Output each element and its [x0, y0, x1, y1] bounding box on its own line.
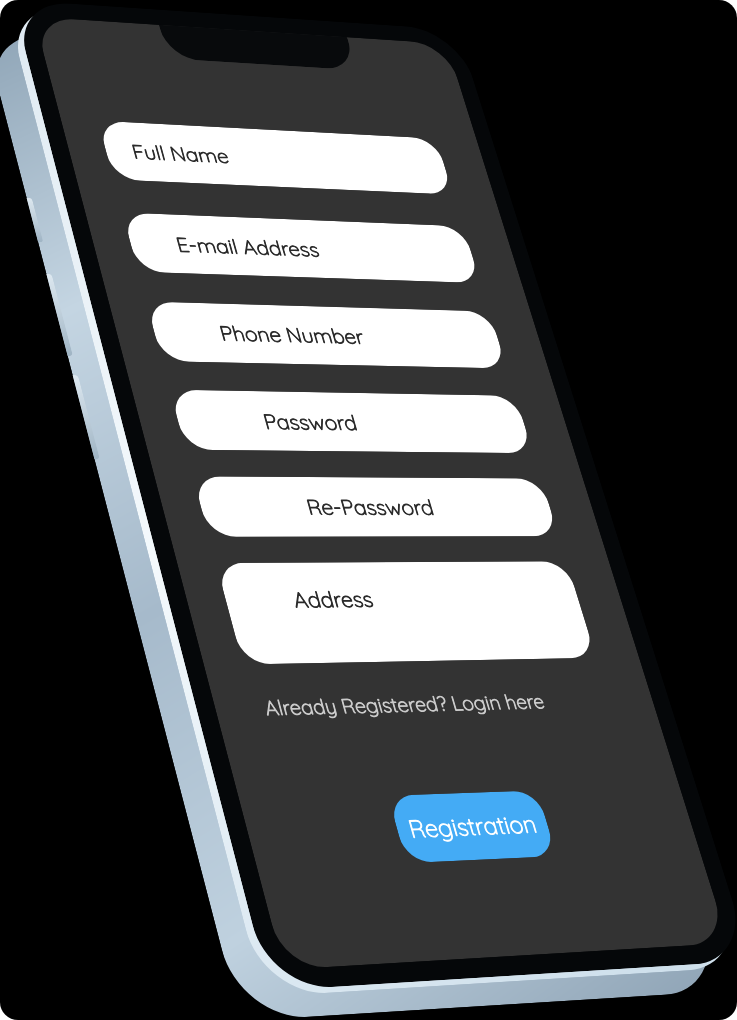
staticText: Phone Number: [216, 320, 367, 349]
button[interactable]: Address: [216, 561, 596, 664]
button[interactable]: Password: [170, 390, 533, 453]
staticText: Password: [260, 408, 360, 435]
staticText: Phone Number: [216, 320, 367, 349]
staticText: Re-Password: [303, 494, 437, 520]
button[interactable]: E-mail Address: [122, 212, 481, 283]
staticText: E-mail Address: [173, 232, 323, 262]
button[interactable]: Re-Password: [193, 476, 559, 537]
button[interactable]: Registration: [388, 790, 557, 863]
staticText: E-mail Address: [173, 232, 323, 262]
staticText: Address: [289, 585, 377, 613]
staticText: Password: [260, 408, 360, 435]
button[interactable]: Full Name: [98, 121, 453, 195]
button[interactable]: Already Registered? Login here: [261, 688, 547, 721]
staticText: Address: [289, 585, 377, 613]
staticText: Registration: [405, 808, 541, 844]
staticText: Full Name: [129, 139, 232, 168]
staticText: Registration: [405, 808, 541, 844]
staticText: Re-Password: [303, 494, 437, 520]
staticText: Already Registered? Login here: [261, 688, 547, 721]
staticText: Full Name: [129, 139, 232, 168]
staticText: Already Registered? Login here: [261, 688, 547, 721]
button[interactable]: Phone Number: [146, 301, 507, 368]
